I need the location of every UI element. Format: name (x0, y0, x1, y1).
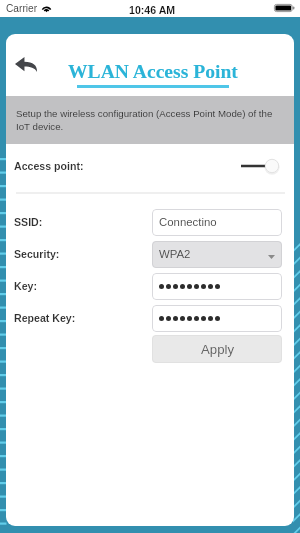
button[interactable]: Connectino (152, 209, 282, 236)
button[interactable]: Access point toggle (241, 157, 281, 175)
button[interactable]: WPA2 (152, 241, 282, 268)
staticText: Apply (201, 342, 234, 357)
staticText: Access point: (14, 160, 84, 172)
staticText: WLAN Access Point (68, 61, 238, 83)
staticText: Security: (14, 248, 60, 260)
button[interactable]: Back (10, 48, 42, 80)
staticText: Connectino (159, 216, 217, 229)
button[interactable]: Apply (152, 335, 282, 363)
staticText: 10:46 AM (129, 4, 176, 16)
staticText: SSID: (14, 216, 43, 228)
button[interactable]: Password (152, 273, 282, 300)
button[interactable]: Access point: (6, 144, 294, 188)
staticText: Carrier (6, 3, 38, 14)
staticText: Setup the wireless configuration (Access… (16, 108, 278, 132)
staticText: WPA2 (159, 248, 191, 261)
staticText: Repeat Key: (14, 312, 76, 324)
staticText: Key: (14, 280, 37, 292)
button[interactable]: Password (152, 305, 282, 332)
